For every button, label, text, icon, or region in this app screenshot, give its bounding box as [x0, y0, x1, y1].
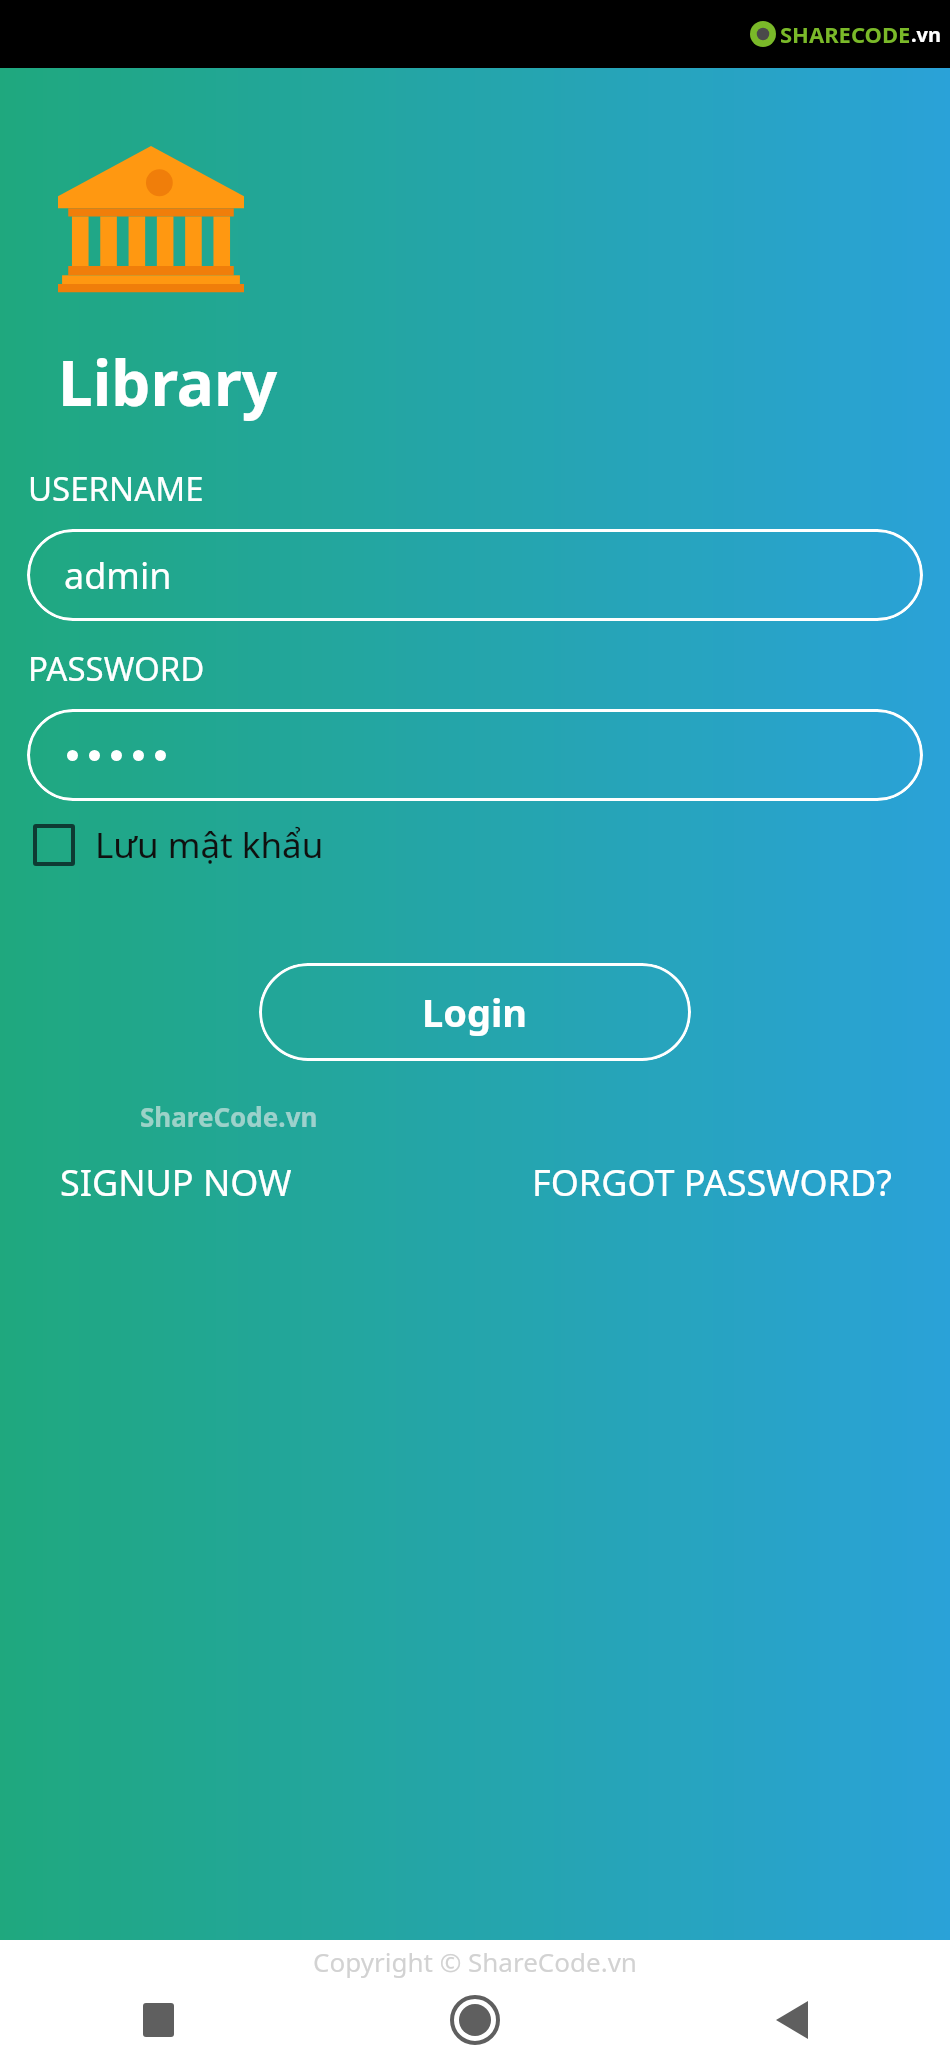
button[interactable]: Login	[259, 963, 691, 1061]
staticText: Copyright © ShareCode.vn	[313, 1944, 637, 1979]
staticText: Login	[422, 986, 528, 1038]
button[interactable]: FORGOT PASSWORD?	[532, 1158, 892, 1207]
button[interactable]: Lưu mật khẩu	[33, 821, 324, 869]
staticText: SHARECODE	[780, 19, 911, 49]
button[interactable]: Recent apps	[0, 1992, 316, 2048]
staticText: .vn	[911, 21, 942, 48]
staticText: ShareCode.vn	[140, 1099, 318, 1134]
staticText: admin	[64, 551, 172, 600]
button[interactable]: Back	[633, 1992, 950, 2048]
staticText: SIGNUP NOW	[60, 1158, 292, 1207]
button[interactable]: SIGNUP NOW	[60, 1158, 292, 1207]
button[interactable]: admin	[27, 529, 923, 621]
staticText: PASSWORD	[28, 646, 205, 691]
button[interactable]	[27, 709, 923, 801]
staticText: Lưu mật khẩu	[95, 821, 324, 869]
button[interactable]: Home	[316, 1992, 633, 2048]
staticText: Library	[58, 340, 278, 424]
staticText: FORGOT PASSWORD?	[532, 1158, 892, 1207]
staticText: USERNAME	[28, 466, 204, 511]
